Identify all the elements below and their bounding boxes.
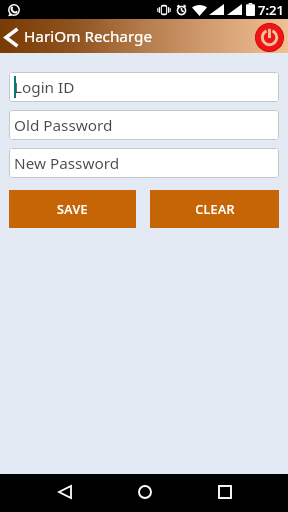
- staticText: New Password: [14, 153, 120, 174]
- button[interactable]: Old Password: [9, 110, 279, 140]
- button[interactable]: Navigate up: [0, 19, 21, 53]
- staticText: CLEAR: [195, 201, 235, 218]
- button[interactable]: CLEAR: [150, 190, 279, 228]
- staticText: SAVE: [57, 201, 88, 218]
- button[interactable]: Recent apps: [208, 475, 241, 508]
- button[interactable]: Login ID: [9, 72, 279, 102]
- button[interactable]: SAVE: [9, 190, 136, 228]
- staticText: Old Password: [14, 115, 113, 136]
- button[interactable]: Logout: [250, 19, 288, 53]
- staticText: Login ID: [14, 77, 75, 98]
- staticText: HariOm Recharge: [24, 26, 153, 47]
- staticText: 7:21: [258, 1, 284, 19]
- button[interactable]: Home: [128, 475, 161, 508]
- button[interactable]: Back: [48, 475, 81, 508]
- button[interactable]: New Password: [9, 148, 279, 178]
